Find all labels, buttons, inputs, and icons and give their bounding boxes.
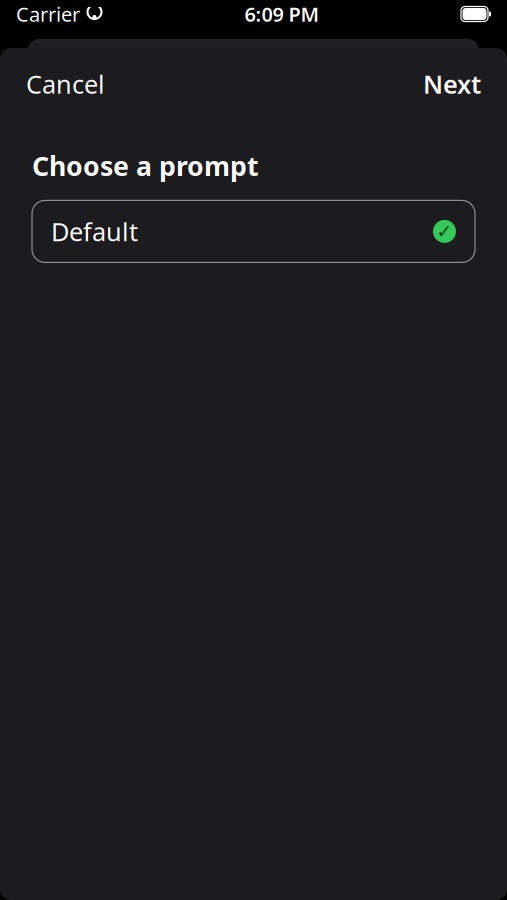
staticText: Carrier (16, 1, 80, 27)
button[interactable]: Default (32, 200, 475, 262)
staticText: Choose a prompt (32, 148, 259, 183)
button[interactable]: Cancel (20, 59, 111, 109)
staticText: 6:09 PM (244, 1, 319, 27)
button[interactable]: Next (417, 59, 487, 109)
staticText: Cancel (26, 67, 105, 101)
staticText: Default (51, 215, 138, 248)
staticText: ✓ (436, 221, 452, 242)
staticText: Next (423, 67, 481, 101)
